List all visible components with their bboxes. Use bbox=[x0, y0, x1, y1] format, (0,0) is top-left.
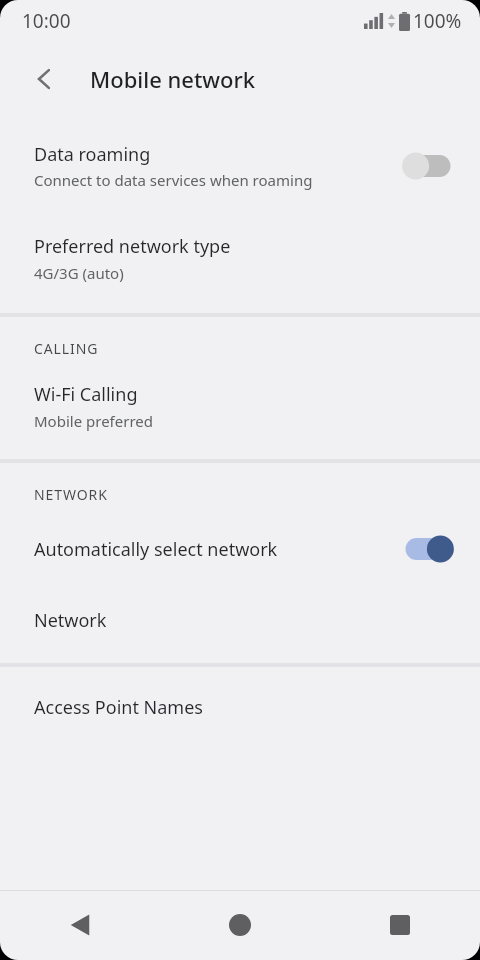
staticText: 4G/3G (auto) bbox=[34, 263, 124, 283]
staticText: Connect to data services when roaming bbox=[34, 170, 313, 190]
button[interactable]: Network bbox=[0, 602, 480, 639]
staticText: NETWORK bbox=[34, 485, 108, 504]
button[interactable]: Back bbox=[0, 890, 160, 960]
button[interactable]: Wi-Fi Calling bbox=[0, 376, 480, 437]
staticText: Network bbox=[34, 608, 107, 633]
staticText: Mobile network bbox=[90, 64, 256, 94]
staticText: Automatically select network bbox=[34, 537, 384, 562]
staticText: Data roaming bbox=[34, 142, 151, 167]
staticText: Preferred network type bbox=[34, 234, 231, 259]
staticText: CALLING bbox=[34, 339, 99, 358]
staticText: Wi-Fi Calling bbox=[34, 382, 138, 407]
button[interactable]: Access Point Names bbox=[0, 689, 480, 726]
button[interactable]: Data roaming bbox=[0, 134, 480, 198]
button[interactable]: On bbox=[400, 532, 456, 566]
button[interactable]: Off bbox=[400, 149, 456, 183]
staticText: 100% bbox=[413, 8, 462, 34]
staticText: 10:00 bbox=[22, 8, 71, 34]
button[interactable]: Automatically select network bbox=[0, 522, 480, 576]
button[interactable]: Home bbox=[160, 890, 320, 960]
staticText: Mobile preferred bbox=[34, 411, 153, 431]
button[interactable]: Back bbox=[22, 56, 68, 102]
staticText: Access Point Names bbox=[34, 695, 203, 720]
button[interactable]: Preferred network type bbox=[0, 228, 480, 289]
button[interactable]: Recent apps bbox=[320, 890, 480, 960]
